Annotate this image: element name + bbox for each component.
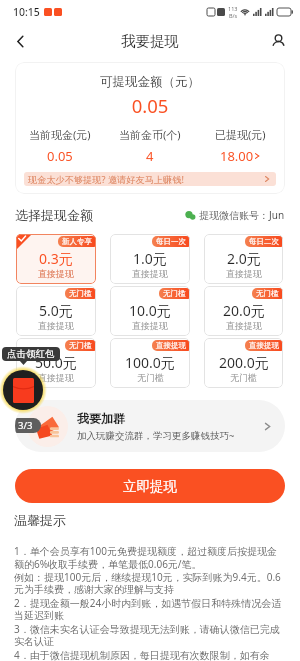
staticText: 0.05 bbox=[15, 93, 285, 118]
staticText: 加入玩赚交流群，学习更多赚钱技巧~ bbox=[77, 429, 235, 442]
staticText: 113 bbox=[228, 5, 238, 12]
staticText: 10.0元 bbox=[129, 301, 171, 320]
button[interactable]: 现金太少不够提现? 邀请好友马上赚钱! bbox=[24, 172, 276, 186]
staticText: 直接提现 bbox=[226, 320, 262, 331]
staticText: 当前金币(个) bbox=[119, 127, 181, 142]
button[interactable]: 每日二次 bbox=[204, 234, 283, 284]
staticText: 0.05 bbox=[47, 147, 73, 165]
staticText: 点击领红包 bbox=[7, 348, 55, 360]
staticText: 新人专享 bbox=[62, 237, 92, 246]
staticText: 现金太少不够提现? 邀请好友马上赚钱! bbox=[28, 173, 184, 186]
staticText: 直接提现 bbox=[132, 268, 168, 279]
staticText: 2.0元 bbox=[227, 249, 261, 268]
staticText: 我要提现 bbox=[121, 32, 179, 50]
button[interactable]: 新人专享 bbox=[16, 234, 96, 284]
staticText: 无门槛 bbox=[256, 289, 279, 298]
staticText: 4 bbox=[146, 147, 154, 165]
staticText: 直接提现 bbox=[38, 372, 74, 383]
staticText: 1．单个会员享有100元免费提现额度，超过额度后按提现金额的6%收取手续费，单笔… bbox=[14, 544, 286, 661]
staticText: 无门槛 bbox=[69, 289, 92, 298]
staticText: 18.00 bbox=[220, 147, 254, 165]
staticText: 10:15 bbox=[13, 5, 40, 19]
staticText: 直接提现 bbox=[156, 341, 186, 350]
staticText: 直接提现 bbox=[38, 320, 74, 331]
button[interactable]: 3/3 bbox=[15, 400, 285, 452]
button[interactable]: Profile bbox=[263, 26, 293, 56]
button[interactable]: 无门槛 bbox=[204, 286, 283, 336]
button[interactable]: 直接提现 bbox=[110, 338, 190, 388]
button[interactable]: 无门槛 bbox=[110, 286, 190, 336]
staticText: 5.0元 bbox=[39, 301, 73, 320]
staticText: 每日二次 bbox=[249, 237, 279, 246]
staticText: 直接提现 bbox=[226, 268, 262, 279]
staticText: 200.0元 bbox=[219, 353, 269, 372]
staticText: 1.0元 bbox=[133, 249, 167, 268]
staticText: 无门槛 bbox=[137, 372, 164, 383]
button[interactable]: Back bbox=[5, 26, 35, 56]
button[interactable]: 每日一次 bbox=[110, 234, 190, 284]
staticText: 直接提现 bbox=[132, 320, 168, 331]
staticText: 无门槛 bbox=[230, 372, 257, 383]
staticText: 提现微信账号： bbox=[199, 209, 269, 222]
staticText: 我要加群 bbox=[77, 411, 125, 426]
staticText: 每日一次 bbox=[156, 237, 186, 246]
button[interactable]: 无门槛 bbox=[16, 286, 96, 336]
staticText: 立即提现 bbox=[123, 478, 177, 495]
staticText: 直接提现 bbox=[38, 268, 74, 279]
staticText: 可提现金额（元） bbox=[15, 74, 285, 90]
staticText: B/s bbox=[229, 12, 238, 19]
staticText: 0.3元 bbox=[39, 249, 73, 268]
staticText: 直接提现 bbox=[249, 341, 279, 350]
staticText: 20.0元 bbox=[223, 301, 265, 320]
staticText: 50.0元 bbox=[35, 353, 77, 372]
staticText: 无门槛 bbox=[69, 341, 92, 350]
button[interactable]: Open red packet bbox=[0, 366, 47, 414]
staticText: 选择提现金额 bbox=[15, 207, 93, 223]
staticText: 当前现金(元) bbox=[29, 127, 91, 142]
staticText: 3/3 bbox=[18, 419, 33, 432]
staticText: 已提现(元) bbox=[215, 127, 266, 142]
staticText: Jun bbox=[269, 208, 285, 222]
staticText: 无门槛 bbox=[163, 289, 186, 298]
staticText: 温馨提示 bbox=[14, 512, 66, 528]
staticText: 100.0元 bbox=[125, 353, 175, 372]
button[interactable]: 直接提现 bbox=[204, 338, 283, 388]
button[interactable]: 无门槛 bbox=[16, 338, 96, 388]
button[interactable]: 立即提现 bbox=[15, 469, 285, 503]
